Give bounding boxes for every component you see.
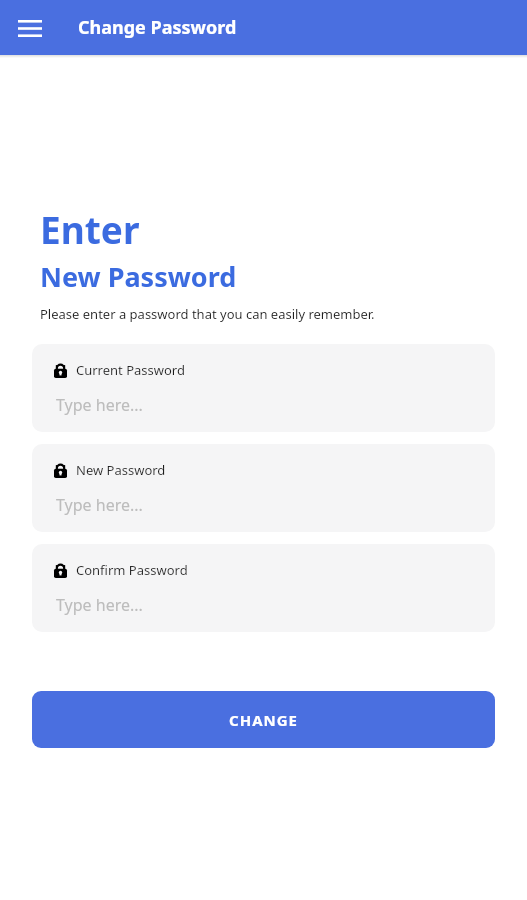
staticText: Type here... [56, 394, 143, 416]
staticText: CHANGE [229, 710, 298, 730]
staticText: Change Password [78, 15, 237, 40]
staticText: Confirm Password [76, 561, 188, 579]
button[interactable]: Confirm Password [32, 544, 495, 632]
staticText: Enter [40, 204, 140, 254]
button[interactable]: CHANGE [32, 691, 495, 748]
staticText: Current Password [76, 361, 185, 379]
staticText: Please enter a password that you can eas… [40, 305, 375, 323]
staticText: Type here... [56, 494, 143, 516]
staticText: New Password [76, 461, 166, 479]
staticText: Type here... [56, 594, 143, 616]
button[interactable]: New Password [32, 444, 495, 532]
button[interactable]: Current Password [32, 344, 495, 432]
button[interactable]: Open navigation menu [12, 10, 48, 46]
staticText: New Password [40, 258, 237, 295]
